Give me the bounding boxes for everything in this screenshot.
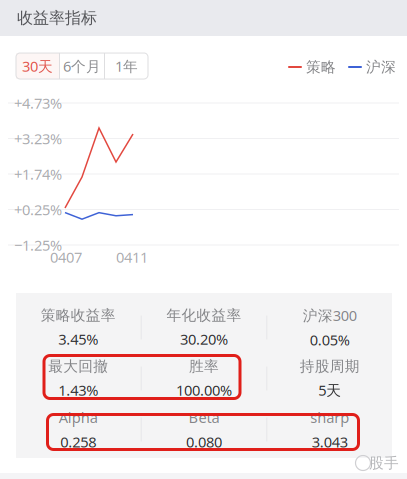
staticText: +3.23% [14,129,62,148]
staticText: 股手 [369,454,399,472]
staticText: +0.25% [14,200,62,219]
button[interactable]: 6个月 [60,53,104,79]
staticText: +1.74% [14,164,62,184]
staticText: 6个月 [63,56,101,76]
button[interactable]: 1年 [105,53,148,79]
staticText: 最大回撤 [48,357,108,375]
staticText: 0.05% [310,330,350,349]
staticText: 策略收益率 [41,306,116,324]
staticText: 0.080 [186,432,222,451]
staticText: 持股周期 [300,357,360,375]
staticText: 0411 [116,247,148,267]
staticText: 收益率指标 [17,8,97,28]
staticText: +4.73% [14,93,62,113]
button[interactable]: 30天 [16,53,59,79]
staticText: 30天 [22,56,53,76]
staticText: 胜率 [189,357,219,375]
staticText: −1.25% [14,235,62,255]
staticText: 沪深 [366,58,396,76]
staticText: Alpha [59,407,98,427]
staticText: 30.20% [180,329,228,349]
staticText: Beta [188,407,219,427]
staticText: sharp [310,407,349,427]
staticText: 沪深300 [303,305,357,325]
staticText: 年化收益率 [166,306,241,324]
staticText: 1年 [115,56,138,76]
staticText: 3.45% [58,329,98,349]
staticText: 100.00% [176,380,232,400]
staticText: 3.043 [312,432,348,451]
staticText: 5天 [318,380,341,400]
staticText: 策略 [306,58,336,76]
staticText: 0.258 [60,432,96,451]
staticText: 1.43% [58,380,98,400]
staticText: 0407 [50,247,82,267]
